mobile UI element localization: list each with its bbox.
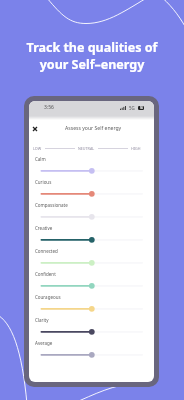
button[interactable]: Calm [29, 156, 154, 179]
staticText: Calm [35, 156, 46, 162]
staticText: Compassionate [35, 202, 68, 208]
staticText: Assess your Self energy [65, 125, 122, 132]
staticText: HIGH [131, 146, 141, 151]
staticText: Clarity [35, 317, 49, 323]
staticText: Track the qualities of your Self–energy [0, 39, 184, 73]
staticText: NEUTRAL [78, 146, 95, 151]
staticText: Curious [35, 179, 52, 185]
button[interactable]: Confident [29, 271, 154, 294]
staticText: LOW [33, 146, 42, 151]
button[interactable]: Compassionate [29, 202, 154, 225]
staticText: Average [35, 340, 53, 346]
staticText: 56 [140, 106, 143, 110]
button[interactable]: Creative [29, 225, 154, 248]
button[interactable]: Close [30, 124, 40, 134]
staticText: Connected [35, 248, 58, 254]
button[interactable]: Curious [29, 179, 154, 202]
staticText: Courageous [35, 294, 61, 300]
staticText: 3:56 [44, 104, 54, 111]
button[interactable]: Clarity [29, 317, 154, 340]
staticText: 5G [129, 105, 135, 111]
button[interactable]: Average [29, 340, 154, 363]
button[interactable]: Connected [29, 248, 154, 271]
staticText: Confident [35, 271, 56, 277]
button[interactable]: Courageous [29, 294, 154, 317]
staticText: Creative [35, 225, 53, 231]
